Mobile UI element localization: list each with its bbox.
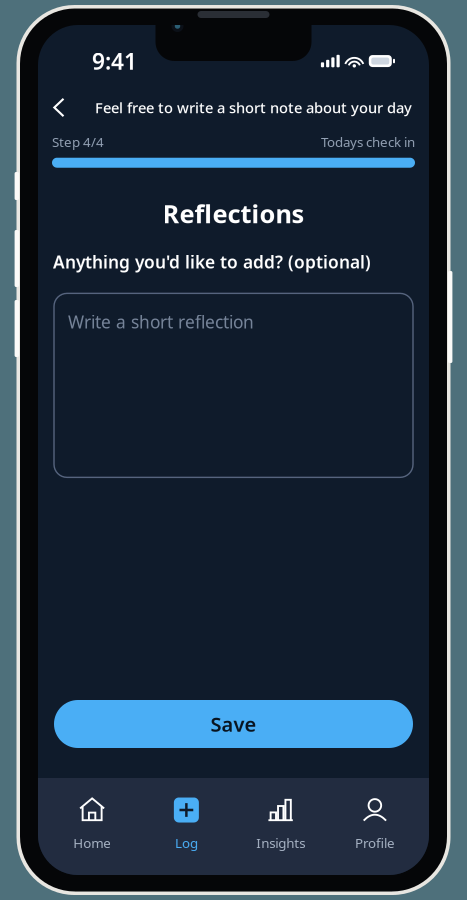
staticText: Insights — [256, 834, 305, 852]
staticText: Save — [210, 711, 256, 737]
staticText: Profile — [355, 834, 395, 852]
staticText: Reflections — [162, 197, 304, 230]
button[interactable]: Profile — [328, 778, 422, 875]
staticText: Step 4/4 — [52, 133, 104, 151]
staticText: Anything you'd like to add? (optional) — [53, 250, 371, 273]
button[interactable]: Home — [45, 778, 139, 875]
staticText: Feel free to write a short note about yo… — [95, 98, 412, 117]
staticText: 9:41 — [92, 46, 137, 76]
button[interactable]: Insights — [233, 778, 328, 875]
staticText: Log — [175, 834, 198, 852]
staticText: Todays check in — [321, 133, 415, 151]
staticText: Home — [73, 834, 111, 852]
button[interactable]: Log — [139, 778, 233, 875]
button[interactable]: Save — [54, 700, 413, 748]
button[interactable]: Back — [38, 92, 80, 122]
staticText: Write a short reflection — [68, 310, 254, 333]
